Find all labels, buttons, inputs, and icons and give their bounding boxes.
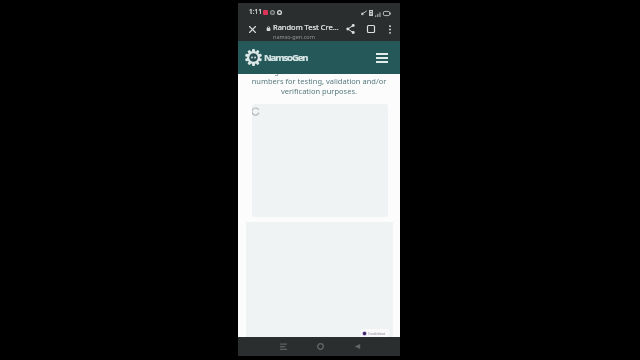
staticText: namso-gen.com — [273, 33, 315, 40]
button[interactable]: Bookmark — [361, 19, 381, 39]
button[interactable]: Back — [345, 337, 369, 356]
staticText: Cookiebot — [368, 331, 386, 336]
staticText: 1:11 — [249, 7, 262, 16]
button[interactable]: Menu — [371, 47, 393, 69]
button[interactable]: Recent apps — [271, 337, 295, 356]
staticText: generate valid credit card numbers for t… — [244, 74, 394, 96]
button[interactable]: Share — [340, 19, 360, 39]
staticText: Random Test Cre… — [273, 22, 339, 32]
button[interactable]: More options — [381, 20, 399, 38]
button[interactable]: Close — [242, 19, 262, 39]
button[interactable]: Home — [308, 337, 332, 356]
staticText: NamsoGen — [264, 51, 308, 64]
button[interactable]: Cookiebot — [361, 329, 389, 337]
